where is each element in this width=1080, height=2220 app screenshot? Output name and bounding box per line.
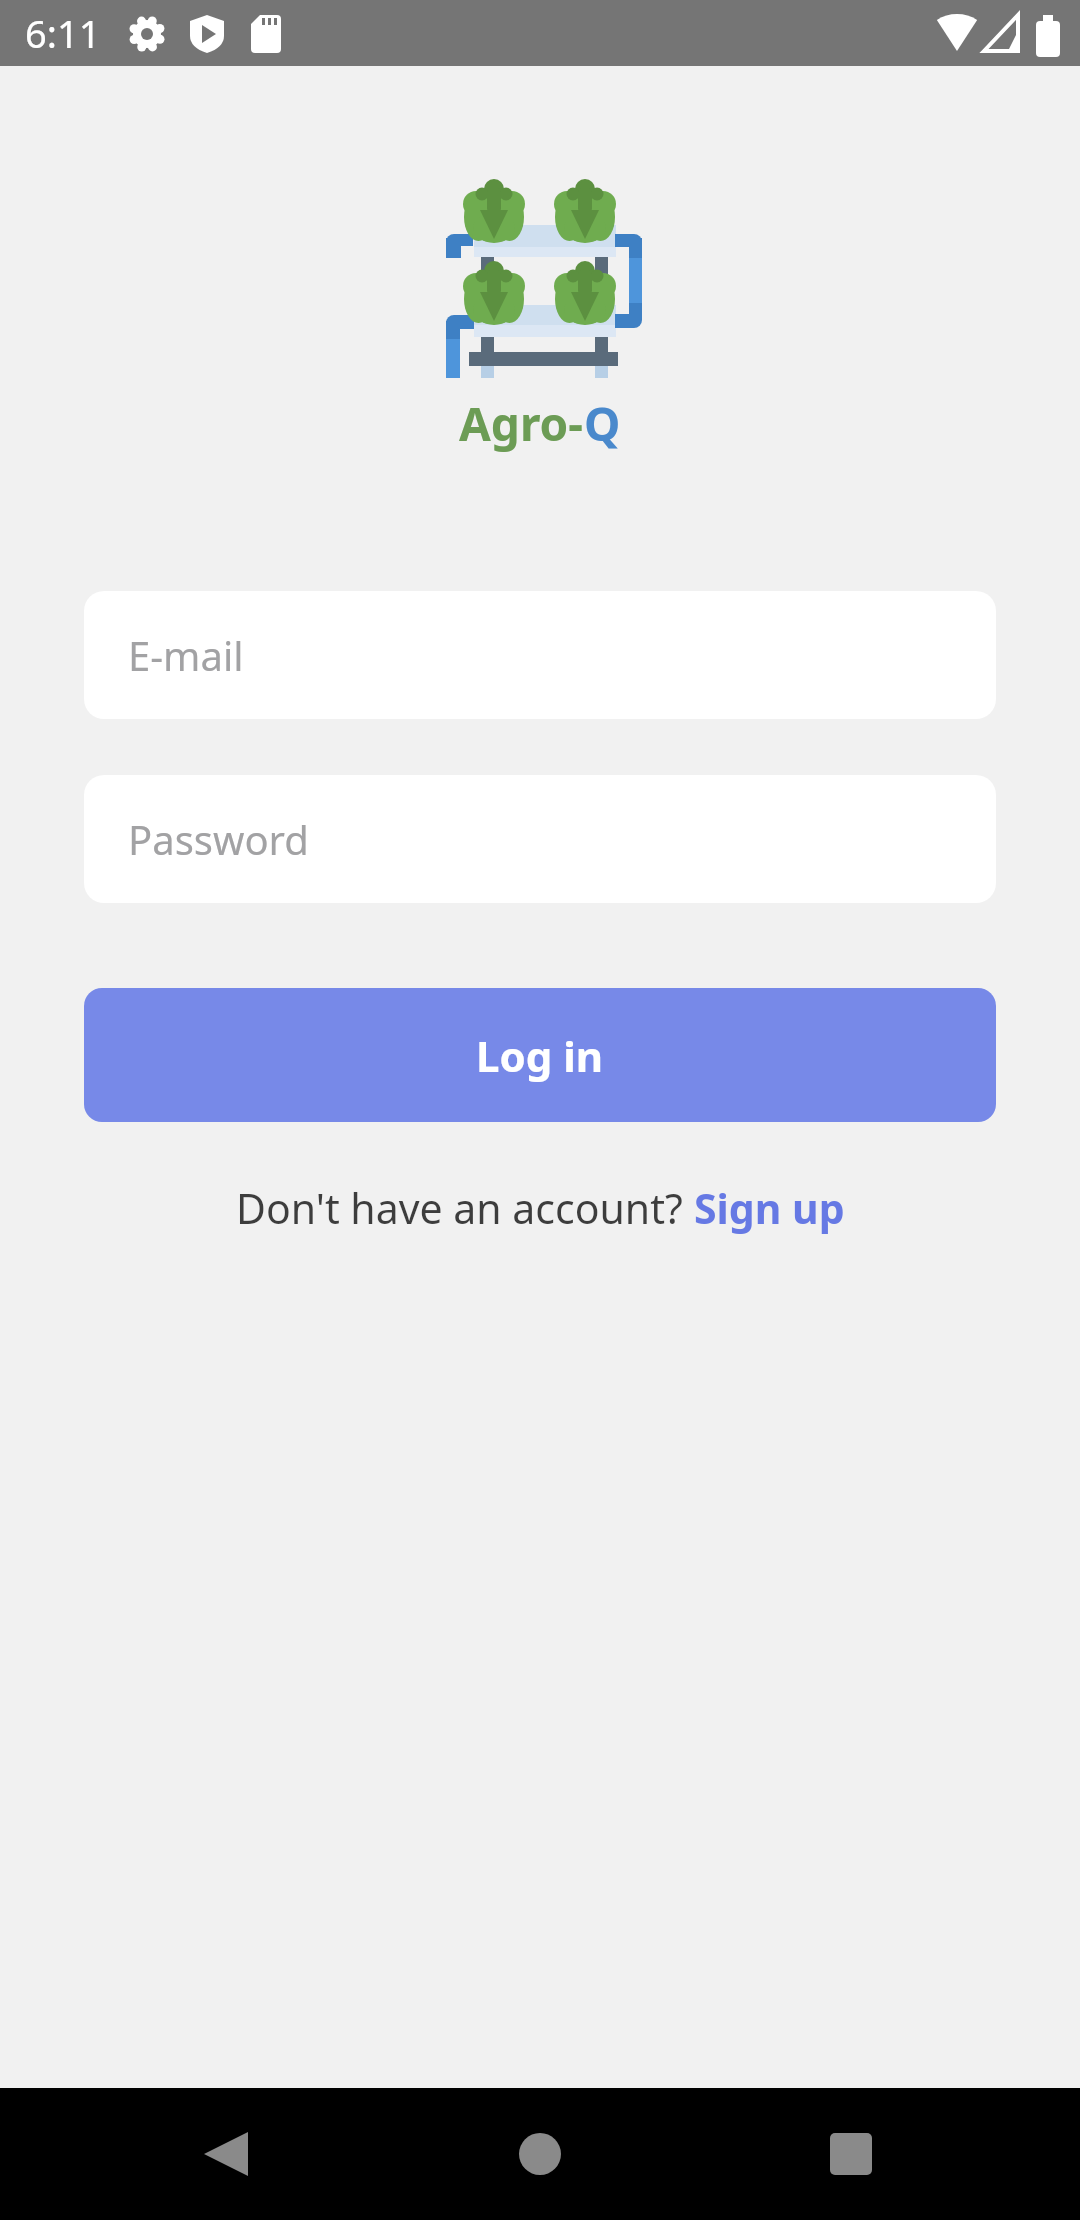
button[interactable] [190, 2118, 262, 2190]
button[interactable] [504, 2118, 576, 2190]
staticText: Agro- [459, 392, 584, 455]
staticText: 6:11 [25, 7, 101, 59]
staticText: Password [128, 812, 309, 866]
button[interactable] [815, 2118, 887, 2190]
button[interactable]: Password [84, 775, 996, 903]
staticText: Don't have an account? [236, 1180, 694, 1236]
button[interactable]: Sign up [694, 1180, 845, 1236]
staticText: Sign up [694, 1180, 845, 1236]
staticText: Log in [476, 1027, 604, 1084]
button[interactable]: Log in [84, 988, 996, 1122]
button[interactable]: E-mail [84, 591, 996, 719]
staticText: E-mail [128, 628, 244, 682]
staticText: Q [584, 392, 621, 455]
